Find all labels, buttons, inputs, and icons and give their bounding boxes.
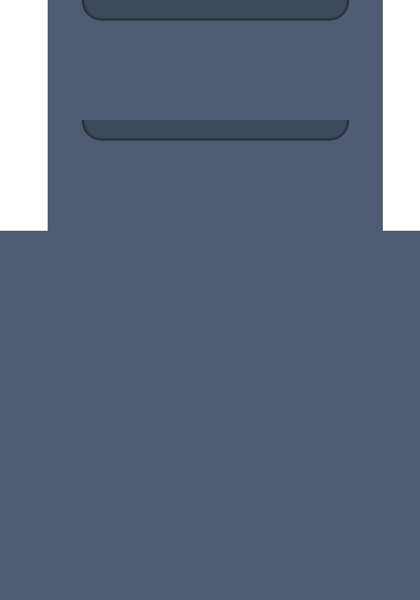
button[interactable]: List item 2: [82, 120, 349, 140]
button[interactable]: List item 1: [82, 0, 349, 20]
